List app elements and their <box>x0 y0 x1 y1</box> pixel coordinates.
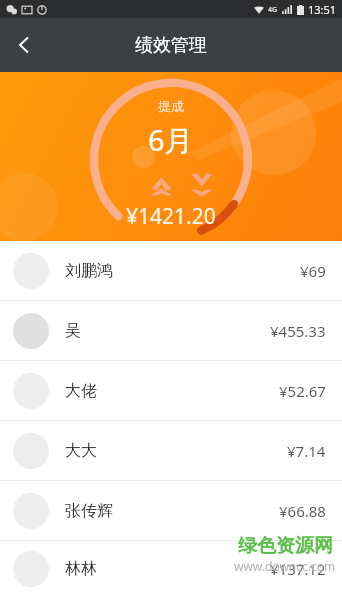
staticText: 大佬 <box>65 381 279 401</box>
button[interactable]: 张传辉 <box>0 481 342 540</box>
staticText: 提成 <box>158 98 184 114</box>
staticText: 张传辉 <box>65 501 279 521</box>
staticText: 大大 <box>65 441 287 461</box>
staticText: ¥52.67 <box>279 381 326 401</box>
staticText: 刘鹏鸿 <box>65 261 300 281</box>
staticText: ¥66.88 <box>279 501 326 521</box>
button[interactable]: 刘鹏鸿 <box>0 241 342 300</box>
button[interactable]: 大佬 <box>0 361 342 420</box>
staticText: 绩效管理 <box>135 34 207 57</box>
staticText: ¥69 <box>300 261 326 281</box>
button[interactable]: 林林 <box>0 541 342 596</box>
staticText: www.downcc.com <box>234 558 336 574</box>
staticText: ¥1421.20 <box>126 202 216 231</box>
button[interactable]: Back <box>0 21 48 69</box>
staticText: 13:51 <box>308 2 337 17</box>
staticText: 吴 <box>65 321 270 341</box>
staticText: 4G <box>268 5 278 15</box>
button[interactable]: 吴 <box>0 301 342 360</box>
button[interactable]: 大大 <box>0 421 342 480</box>
staticText: ¥137.12 <box>270 559 326 579</box>
staticText: 绿色资源网 <box>238 534 333 558</box>
staticText: 6月 <box>148 120 194 160</box>
staticText: 林林 <box>65 559 270 579</box>
staticText: ¥7.14 <box>287 441 326 461</box>
staticText: ¥455.33 <box>270 321 326 341</box>
